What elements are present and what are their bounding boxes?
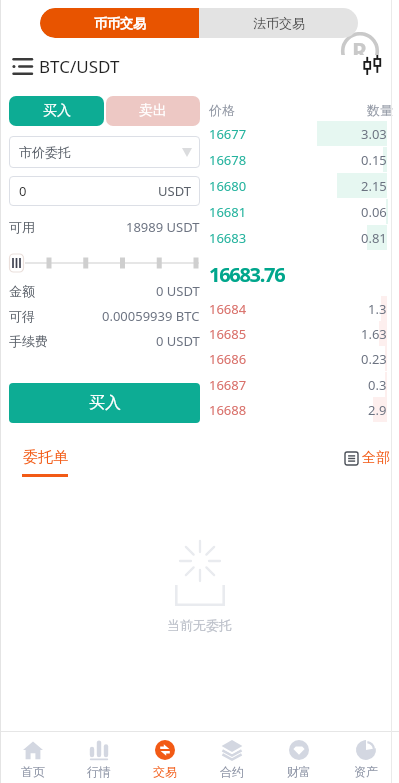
- staticText: 0.81: [361, 229, 387, 247]
- staticText: 价格: [209, 102, 235, 118]
- button[interactable]: 全部: [345, 448, 390, 468]
- staticText: 0.06: [361, 203, 387, 221]
- button[interactable]: 16684: [203, 296, 399, 321]
- staticText: 可得: [9, 308, 35, 324]
- staticText: 委托单: [23, 448, 68, 467]
- staticText: 2.9: [368, 401, 387, 419]
- staticText: 0 USDT: [156, 332, 200, 350]
- staticText: 1.63: [361, 325, 387, 343]
- staticText: 数量: [367, 102, 393, 118]
- staticText: 资产: [354, 764, 378, 779]
- staticText: 当前无委托: [167, 617, 232, 633]
- staticText: 0.3: [368, 376, 387, 394]
- staticText: 16677: [209, 125, 247, 143]
- staticText: 可用: [9, 219, 35, 235]
- staticText: 16687: [209, 376, 247, 394]
- button[interactable]: 首页: [0, 732, 66, 783]
- button[interactable]: 法币交易: [199, 8, 358, 38]
- staticText: 全部: [362, 449, 390, 467]
- staticText: 币币交易: [94, 15, 146, 31]
- staticText: 16685: [209, 325, 247, 343]
- button[interactable]: 16687: [203, 372, 399, 397]
- button[interactable]: 交易: [132, 732, 198, 783]
- staticText: 买入: [43, 102, 71, 120]
- staticText: 合约: [220, 764, 244, 779]
- staticText: 1.3: [368, 300, 387, 318]
- staticText: 16680: [209, 177, 247, 195]
- button[interactable]: 16678: [203, 147, 399, 172]
- button[interactable]: 16686: [203, 346, 399, 371]
- button[interactable]: 16688: [203, 397, 399, 422]
- staticText: 行情: [87, 764, 111, 779]
- staticText: 首页: [21, 764, 45, 779]
- staticText: 16684: [209, 300, 247, 318]
- staticText: 16683.76: [209, 261, 285, 285]
- staticText: 0.00059939 BTC: [102, 307, 200, 325]
- button[interactable]: 16680: [203, 173, 399, 198]
- button[interactable]: 币币交易: [40, 8, 199, 38]
- button[interactable]: 16677: [203, 121, 399, 146]
- staticText: 金额: [9, 283, 35, 299]
- staticText: 0.15: [361, 151, 387, 169]
- button[interactable]: 资产: [332, 732, 399, 783]
- button[interactable]: 行情: [66, 732, 132, 783]
- staticText: 16678: [209, 151, 247, 169]
- button[interactable]: 财富: [265, 732, 332, 783]
- staticText: 0 USDT: [156, 282, 200, 300]
- staticText: 法币交易: [253, 15, 305, 31]
- staticText: 3.03: [361, 125, 387, 143]
- staticText: 交易: [153, 764, 177, 779]
- staticText: 16683: [209, 229, 247, 247]
- staticText: R: [352, 35, 368, 55]
- staticText: 财富: [287, 764, 311, 779]
- staticText: 2.15: [361, 177, 387, 195]
- staticText: 市价委托: [19, 144, 71, 160]
- staticText: 手续费: [9, 333, 48, 349]
- button[interactable]: 买入: [9, 383, 200, 423]
- staticText: 卖出: [139, 102, 167, 120]
- button[interactable]: 合约: [198, 732, 265, 783]
- button[interactable]: 市价委托: [9, 136, 200, 168]
- button[interactable]: Market list: [10, 54, 34, 78]
- button[interactable]: 16685: [203, 321, 399, 346]
- staticText: 买入: [89, 393, 121, 413]
- button[interactable]: 卖出: [106, 96, 200, 126]
- button[interactable]: 委托单: [22, 448, 68, 477]
- button[interactable]: 买入: [9, 96, 104, 126]
- button[interactable]: K line chart: [358, 46, 390, 86]
- button[interactable]: 16681: [203, 199, 399, 224]
- staticText: 16686: [209, 350, 247, 368]
- staticText: 16688: [209, 401, 247, 419]
- button[interactable]: 16683: [203, 225, 399, 250]
- staticText: BTC/USDT: [39, 55, 120, 78]
- staticText: 16681: [209, 203, 247, 221]
- staticText: 0.23: [361, 350, 387, 368]
- staticText: 18989 USDT: [126, 218, 200, 236]
- staticText: 0: [19, 182, 27, 200]
- staticText: USDT: [158, 182, 191, 200]
